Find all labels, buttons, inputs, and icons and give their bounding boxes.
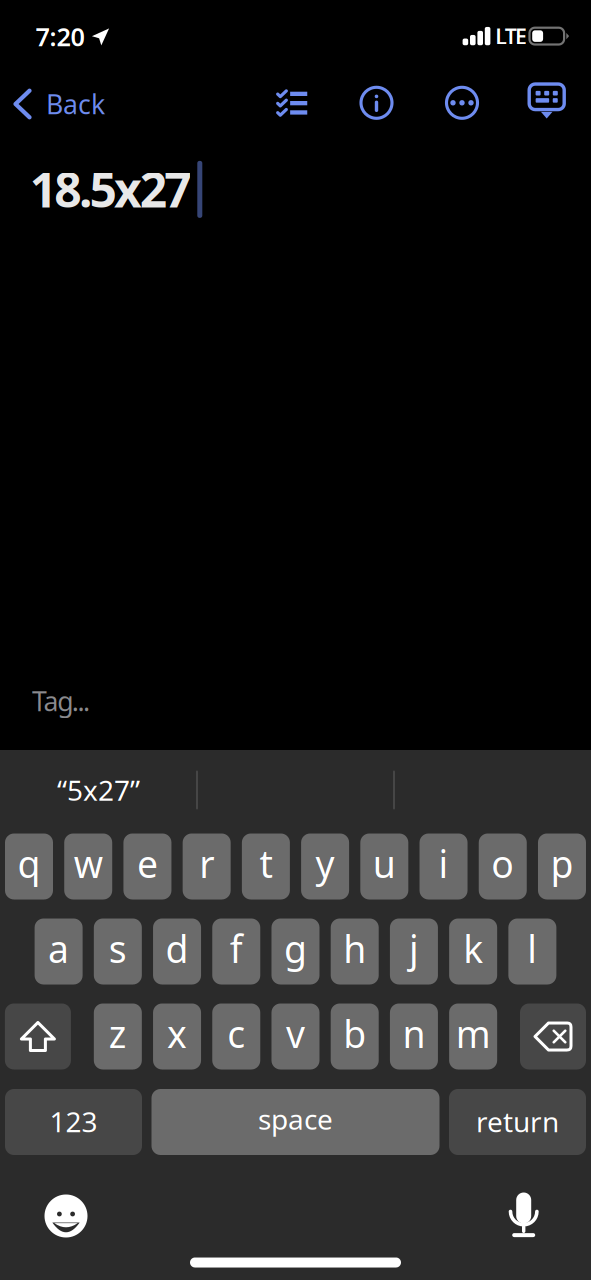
button[interactable]: Info bbox=[349, 76, 403, 130]
button[interactable]: Hide Keyboard bbox=[519, 74, 574, 129]
button[interactable]: r bbox=[183, 833, 231, 899]
staticText: r bbox=[199, 839, 214, 888]
button[interactable]: z bbox=[94, 1003, 142, 1069]
staticText: 18.5x27 bbox=[30, 157, 191, 221]
button[interactable]: space bbox=[151, 1089, 439, 1155]
button[interactable]: n bbox=[390, 1003, 438, 1069]
button[interactable]: Emoji bbox=[34, 1184, 97, 1247]
staticText: w bbox=[74, 839, 103, 888]
staticText: j bbox=[409, 924, 419, 973]
staticText: x bbox=[167, 1009, 187, 1058]
button[interactable]: Checklist bbox=[264, 77, 319, 128]
button[interactable]: 123 bbox=[5, 1089, 142, 1155]
button[interactable]: Dictate bbox=[498, 1181, 549, 1248]
button[interactable]: e bbox=[123, 833, 171, 899]
button[interactable]: p bbox=[538, 833, 586, 899]
button[interactable]: o bbox=[479, 833, 527, 899]
staticText: p bbox=[550, 839, 573, 888]
button[interactable]: w bbox=[64, 833, 112, 899]
button[interactable]: l bbox=[508, 918, 556, 984]
staticText: return bbox=[476, 1103, 559, 1140]
staticText: Back bbox=[46, 86, 105, 122]
button[interactable]: m bbox=[449, 1003, 497, 1069]
staticText: z bbox=[109, 1009, 127, 1058]
staticText: m bbox=[456, 1009, 491, 1058]
button[interactable]: a bbox=[35, 918, 83, 984]
button[interactable]: g bbox=[271, 918, 319, 984]
staticText: e bbox=[137, 839, 158, 888]
staticText: “5x27” bbox=[57, 771, 140, 809]
staticText: y bbox=[316, 839, 335, 888]
button[interactable]: q bbox=[5, 833, 53, 899]
button[interactable]: s bbox=[94, 918, 142, 984]
button[interactable]: Shift bbox=[5, 1003, 71, 1069]
button[interactable]: return bbox=[449, 1089, 586, 1155]
staticText: b bbox=[343, 1009, 366, 1058]
button[interactable]: b bbox=[331, 1003, 379, 1069]
button[interactable]: k bbox=[449, 918, 497, 984]
staticText: c bbox=[227, 1009, 245, 1058]
staticText: 123 bbox=[49, 1103, 97, 1140]
staticText: k bbox=[463, 924, 483, 973]
staticText: a bbox=[48, 924, 69, 973]
staticText: f bbox=[230, 924, 243, 973]
staticText: h bbox=[343, 924, 366, 973]
staticText: u bbox=[373, 839, 396, 888]
button[interactable]: h bbox=[331, 918, 379, 984]
staticText: s bbox=[109, 924, 127, 973]
button[interactable]: Delete bbox=[520, 1003, 586, 1069]
staticText: space bbox=[258, 1100, 333, 1138]
staticText: 7:20 bbox=[35, 20, 84, 53]
button[interactable]: More bbox=[435, 76, 489, 130]
button[interactable]: y bbox=[301, 833, 349, 899]
staticText: t bbox=[259, 839, 272, 888]
staticText: d bbox=[166, 924, 189, 973]
staticText: v bbox=[286, 1009, 305, 1058]
staticText: o bbox=[491, 839, 514, 888]
button[interactable]: i bbox=[419, 833, 467, 899]
staticText: l bbox=[527, 924, 537, 973]
button[interactable]: “5x27” bbox=[0, 755, 197, 825]
button[interactable]: c bbox=[212, 1003, 260, 1069]
button[interactable]: j bbox=[390, 918, 438, 984]
button[interactable]: d bbox=[153, 918, 201, 984]
staticText: LTE bbox=[495, 22, 527, 50]
button[interactable]: v bbox=[271, 1003, 319, 1069]
button[interactable]: f bbox=[212, 918, 260, 984]
staticText: q bbox=[17, 839, 40, 888]
staticText: Tag... bbox=[32, 683, 90, 719]
button[interactable]: t bbox=[242, 833, 290, 899]
button[interactable]: x bbox=[153, 1003, 201, 1069]
staticText: i bbox=[438, 839, 448, 888]
staticText: n bbox=[402, 1009, 425, 1058]
button[interactable]: Back bbox=[1, 76, 117, 132]
button[interactable]: u bbox=[360, 833, 408, 899]
staticText: g bbox=[284, 924, 307, 973]
